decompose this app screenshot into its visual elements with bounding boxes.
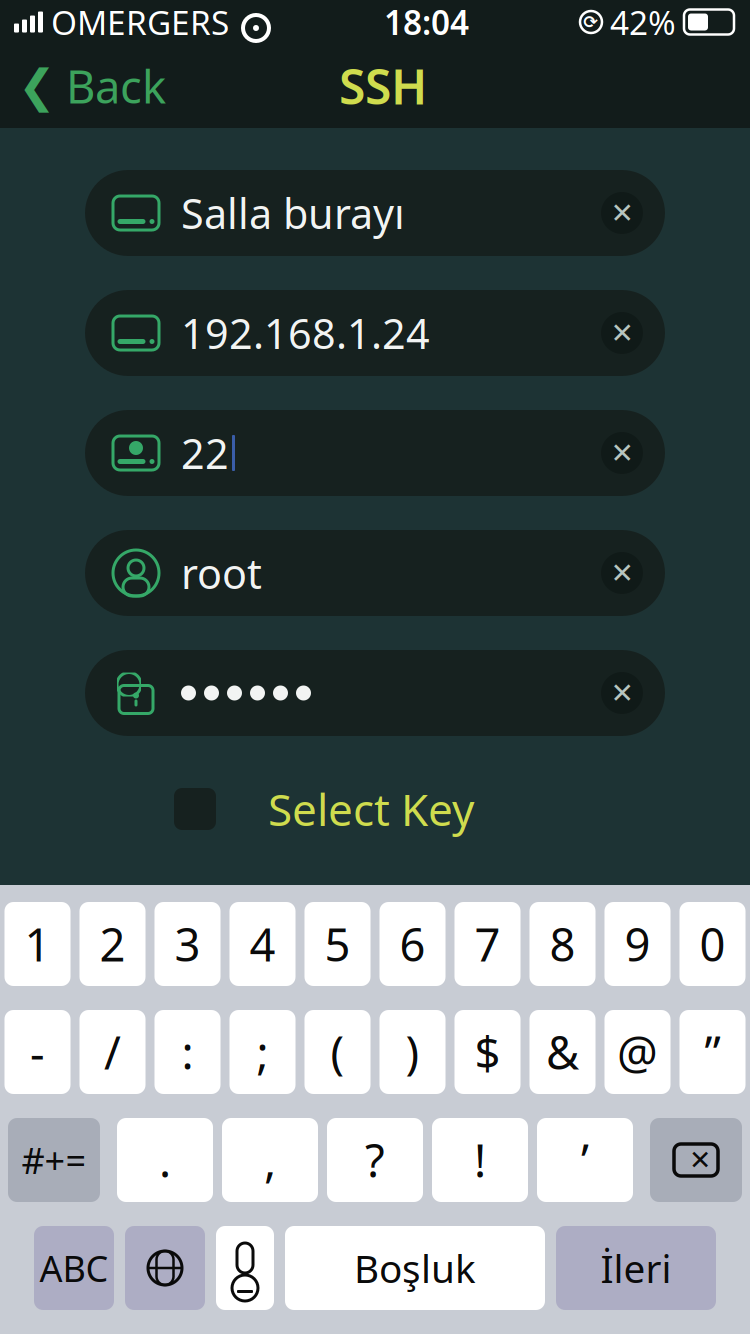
- staticText: 5: [324, 914, 350, 974]
- staticText: SSH: [339, 54, 427, 118]
- button[interactable]: &: [529, 1010, 595, 1094]
- button[interactable]: .: [117, 1118, 213, 1202]
- staticText: &: [546, 1022, 579, 1082]
- button[interactable]: Next keyboard: [125, 1226, 205, 1310]
- button[interactable]: ”: [679, 1010, 745, 1094]
- staticText: 3: [174, 914, 200, 974]
- button[interactable]: Clear: [593, 424, 651, 482]
- staticText: ✕: [610, 437, 633, 469]
- staticText: 18:04: [384, 0, 469, 44]
- staticText: ”: [704, 1022, 720, 1082]
- button[interactable]: Delete: [650, 1118, 742, 1202]
- staticText: ✕: [610, 557, 633, 589]
- button[interactable]: ?: [327, 1118, 423, 1202]
- button[interactable]: Select Key: [174, 774, 594, 844]
- staticText: (: [330, 1022, 344, 1082]
- staticText: 0: [699, 914, 725, 974]
- button[interactable]: 3: [154, 902, 220, 986]
- staticText: Select Key: [268, 780, 474, 838]
- button[interactable]: -: [4, 1010, 70, 1094]
- staticText: -: [30, 1022, 45, 1082]
- staticText: 9: [624, 914, 650, 974]
- staticText: 22: [181, 426, 229, 480]
- staticText: 7: [474, 914, 500, 974]
- staticText: @: [617, 1022, 658, 1082]
- staticText: 2: [99, 914, 125, 974]
- staticText: 42%: [610, 0, 676, 44]
- staticText: ✕: [610, 677, 633, 709]
- button[interactable]: 2: [79, 902, 145, 986]
- button[interactable]: İleri: [556, 1226, 716, 1310]
- staticText: 8: [549, 914, 575, 974]
- button[interactable]: Dictate: [216, 1226, 274, 1310]
- staticText: ?: [365, 1130, 385, 1190]
- button[interactable]: 5: [304, 902, 370, 986]
- staticText: /: [104, 1022, 121, 1082]
- staticText: ;: [256, 1022, 268, 1082]
- staticText: ,: [264, 1130, 276, 1190]
- button[interactable]: Clear: [593, 664, 651, 722]
- staticText: 192.168.1.24: [181, 306, 430, 360]
- button[interactable]: :: [154, 1010, 220, 1094]
- button[interactable]: Clear: [593, 304, 651, 362]
- staticText: !: [474, 1130, 486, 1190]
- staticText: ): [405, 1022, 419, 1082]
- staticText: Boşluk: [354, 1242, 476, 1294]
- button[interactable]: #+=: [8, 1118, 100, 1202]
- button[interactable]: Clear: [593, 184, 651, 242]
- staticText: root: [181, 546, 262, 600]
- staticText: ABC: [39, 1244, 108, 1292]
- button[interactable]: 8: [529, 902, 595, 986]
- staticText: ✕: [610, 197, 633, 229]
- button[interactable]: 9: [604, 902, 670, 986]
- staticText: Back: [66, 56, 166, 116]
- button[interactable]: 0: [679, 902, 745, 986]
- button[interactable]: ;: [229, 1010, 295, 1094]
- button[interactable]: (: [304, 1010, 370, 1094]
- staticText: ’: [581, 1130, 589, 1190]
- button[interactable]: ❮: [0, 48, 166, 124]
- staticText: :: [181, 1022, 193, 1082]
- button[interactable]: 6: [379, 902, 445, 986]
- button[interactable]: ’: [537, 1118, 633, 1202]
- staticText: $: [474, 1022, 500, 1082]
- staticText: #+=: [21, 1136, 86, 1184]
- button[interactable]: Clear: [593, 544, 651, 602]
- staticText: ✕: [689, 1145, 711, 1175]
- staticText: .: [159, 1130, 171, 1190]
- staticText: 1: [24, 914, 50, 974]
- staticText: İleri: [600, 1242, 671, 1294]
- button[interactable]: ABC: [34, 1226, 114, 1310]
- staticText: 4: [249, 914, 275, 974]
- staticText: Salla burayı: [181, 186, 405, 240]
- button[interactable]: 4: [229, 902, 295, 986]
- button[interactable]: 7: [454, 902, 520, 986]
- button[interactable]: Boşluk: [285, 1226, 545, 1310]
- button[interactable]: 1: [4, 902, 70, 986]
- button[interactable]: ,: [222, 1118, 318, 1202]
- staticText: ⟳: [583, 12, 598, 32]
- staticText: OMERGERS: [51, 0, 229, 44]
- button[interactable]: @: [604, 1010, 670, 1094]
- button[interactable]: ): [379, 1010, 445, 1094]
- button[interactable]: /: [79, 1010, 145, 1094]
- staticText: 6: [399, 914, 425, 974]
- staticText: ❮: [18, 60, 56, 112]
- button[interactable]: $: [454, 1010, 520, 1094]
- button[interactable]: !: [432, 1118, 528, 1202]
- staticText: ✕: [610, 317, 633, 349]
